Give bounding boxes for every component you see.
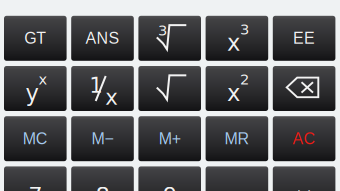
staticText: x xyxy=(227,30,240,56)
staticText: GT xyxy=(24,29,46,47)
staticText: ANS xyxy=(85,29,119,47)
staticText: 3 xyxy=(158,22,167,39)
staticText: MC xyxy=(23,130,48,148)
staticText: y xyxy=(25,80,38,106)
button[interactable]: ANS xyxy=(71,16,134,61)
button[interactable]: GT xyxy=(4,16,67,61)
button[interactable]: MC xyxy=(4,116,67,161)
button[interactable]: x xyxy=(206,16,268,61)
button[interactable]: Cube root xyxy=(138,16,201,61)
staticText: 7 xyxy=(28,183,42,191)
staticText: × xyxy=(295,183,314,191)
staticText: EE xyxy=(293,29,315,47)
staticText: MR xyxy=(224,130,249,148)
staticText: 1 xyxy=(89,73,103,98)
button[interactable]: AC xyxy=(273,116,335,161)
button[interactable]: MR xyxy=(206,116,268,161)
staticText: x xyxy=(38,71,47,88)
button[interactable]: ÷ xyxy=(206,166,268,191)
button[interactable]: Square root xyxy=(138,66,201,111)
button[interactable]: Reciprocal xyxy=(71,66,134,111)
button[interactable]: 8 xyxy=(71,166,134,191)
button[interactable]: EE xyxy=(273,16,335,61)
button[interactable]: y xyxy=(4,66,67,111)
staticText: 2 xyxy=(240,71,249,88)
staticText: x xyxy=(105,85,118,110)
staticText: 8 xyxy=(95,183,109,191)
button[interactable]: x xyxy=(206,66,268,111)
button[interactable]: Delete xyxy=(273,66,335,111)
button[interactable]: M+ xyxy=(138,116,201,161)
staticText: M− xyxy=(91,130,113,148)
button[interactable]: 7 xyxy=(4,166,67,191)
button[interactable]: × xyxy=(273,166,335,191)
staticText: x xyxy=(227,80,240,106)
button[interactable]: 9 xyxy=(138,166,201,191)
staticText: 3 xyxy=(240,21,249,38)
button[interactable]: M− xyxy=(71,116,134,161)
staticText: AC xyxy=(293,130,316,148)
staticText: M+ xyxy=(159,130,181,148)
staticText: 9 xyxy=(163,183,177,191)
